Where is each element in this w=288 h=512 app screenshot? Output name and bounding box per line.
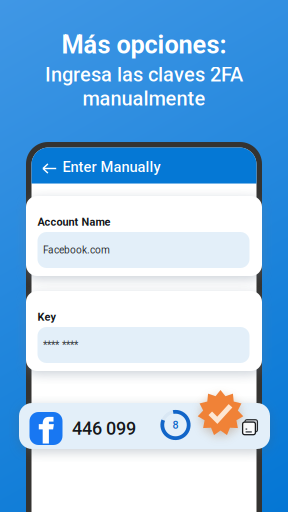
button[interactable]: Copy code (241, 418, 256, 433)
staticText: Facebook.com (43, 244, 110, 256)
staticText: 446 099 (72, 418, 136, 439)
button[interactable]: Back (31, 152, 63, 185)
staticText: Enter Manually (62, 158, 160, 176)
staticText: 8 (172, 419, 178, 431)
staticText: manualmente (82, 87, 205, 110)
staticText: **** **** (43, 339, 78, 351)
staticText: Key (37, 310, 56, 323)
staticText: Account Name (37, 215, 110, 228)
staticText: Ingresa las claves 2FA (45, 63, 243, 86)
staticText: Más opciones: (61, 30, 226, 60)
